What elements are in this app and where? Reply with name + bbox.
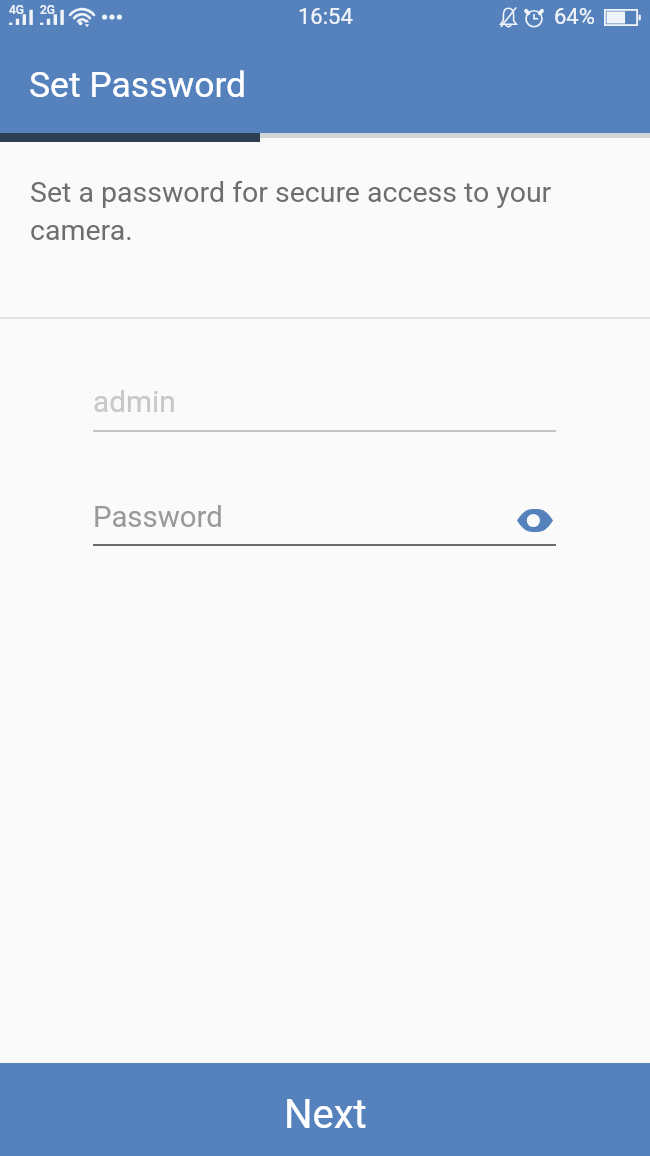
staticText: Set Password bbox=[29, 64, 247, 106]
staticText: admin bbox=[93, 384, 176, 419]
staticText: 2G bbox=[40, 3, 55, 17]
staticText: Next bbox=[284, 1091, 367, 1138]
staticText: 4G bbox=[9, 3, 24, 17]
button[interactable]: Password bbox=[93, 494, 556, 546]
button[interactable]: admin bbox=[93, 384, 556, 432]
button[interactable]: Show password bbox=[512, 497, 558, 543]
staticText: Password bbox=[93, 500, 223, 534]
staticText: Set a password for secure access to your… bbox=[30, 176, 575, 247]
button[interactable]: Next bbox=[0, 1063, 650, 1156]
staticText: 64% bbox=[554, 4, 595, 30]
staticText: 16:54 bbox=[298, 4, 353, 30]
